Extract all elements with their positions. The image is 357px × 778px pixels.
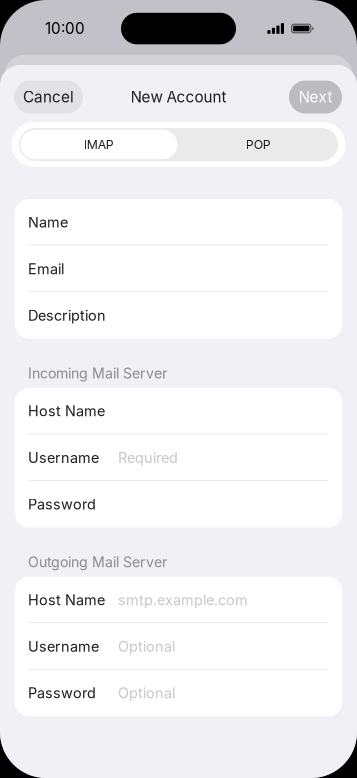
button[interactable]: Next <box>289 80 342 113</box>
staticText: smtp.example.com <box>118 591 248 609</box>
staticText: Username <box>28 449 99 466</box>
staticText: Cancel <box>23 88 74 106</box>
staticText: Incoming Mail Server <box>28 365 167 382</box>
button[interactable]: Password <box>14 670 342 716</box>
button[interactable]: Email <box>14 246 342 292</box>
staticText: Name <box>28 214 68 231</box>
staticText: POP <box>246 137 271 152</box>
button[interactable]: Name <box>14 199 342 246</box>
staticText: Required <box>118 449 178 466</box>
staticText: Description <box>28 307 106 324</box>
button[interactable]: Username <box>14 434 342 481</box>
staticText: 10:00 <box>45 19 85 38</box>
staticText: Outgoing Mail Server <box>28 553 167 571</box>
staticText: Username <box>28 638 99 655</box>
button[interactable]: Host Name <box>14 577 342 623</box>
button[interactable]: Cancel <box>14 80 83 113</box>
staticText: Email <box>28 260 64 278</box>
button[interactable]: Host Name <box>14 388 342 434</box>
button[interactable]: Username <box>14 623 342 670</box>
staticText: Password <box>28 684 96 702</box>
staticText: Optional <box>118 638 175 655</box>
staticText: Password <box>28 496 96 513</box>
button[interactable]: POP <box>178 128 338 161</box>
button[interactable]: IMAP <box>19 128 178 161</box>
staticText: New Account <box>130 88 226 106</box>
staticText: Host Name <box>28 402 105 420</box>
staticText: IMAP <box>84 137 114 152</box>
staticText: Optional <box>118 684 175 702</box>
button[interactable]: Password <box>14 481 342 528</box>
button[interactable]: Description <box>14 292 342 339</box>
staticText: Next <box>298 88 332 106</box>
staticText: Host Name <box>28 591 105 609</box>
